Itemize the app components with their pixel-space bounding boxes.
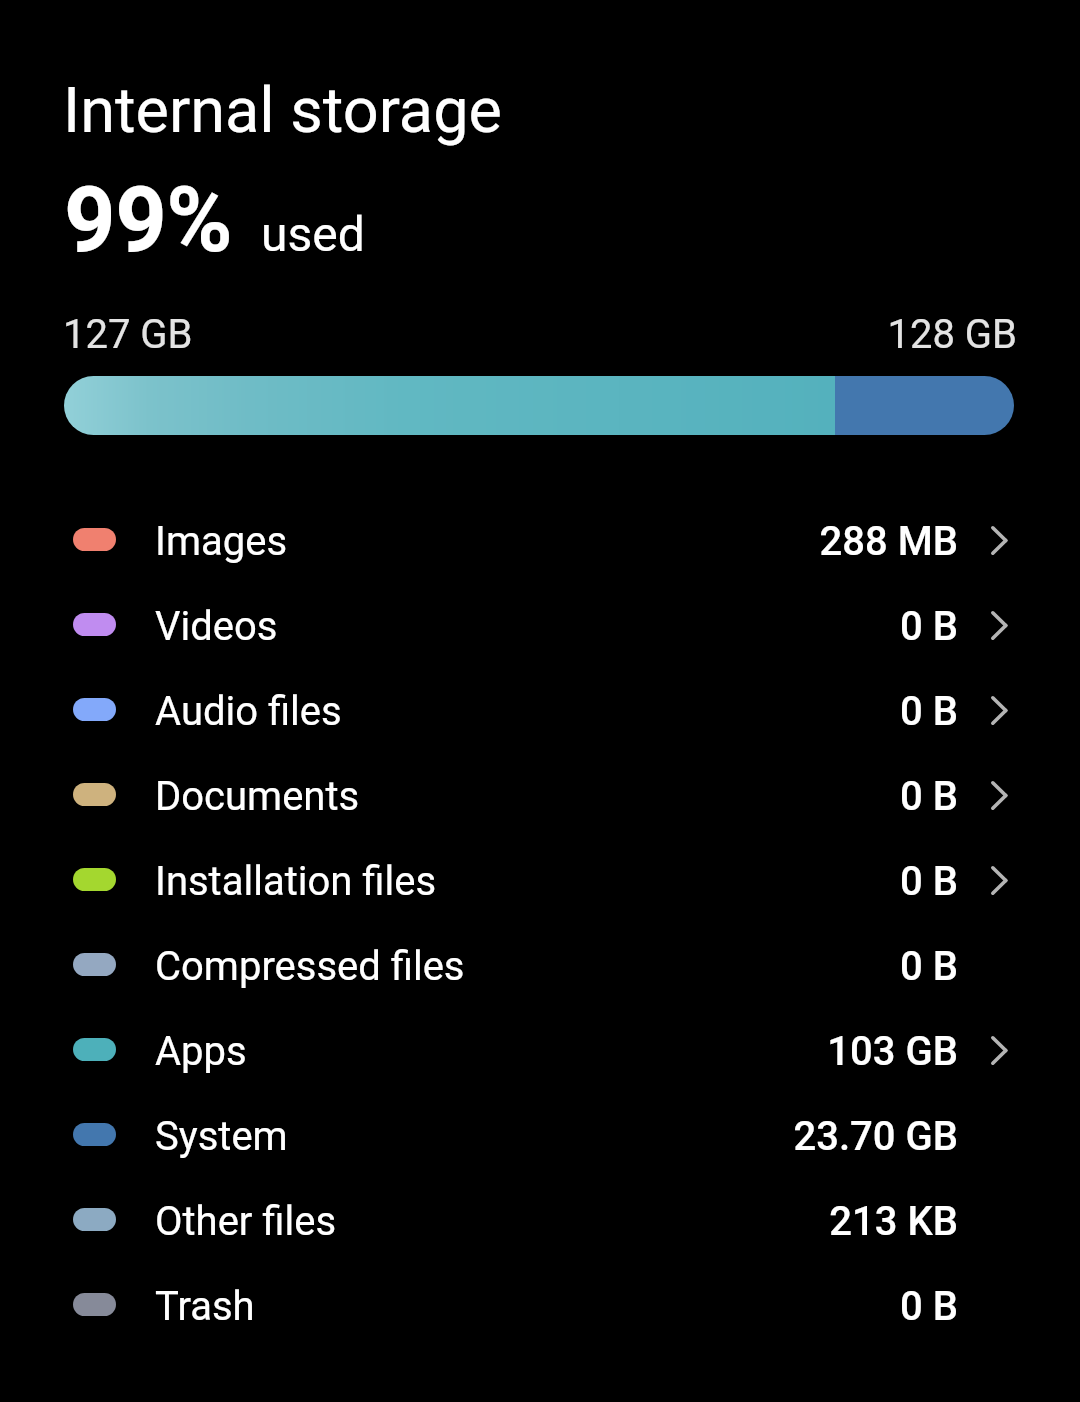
staticText: System xyxy=(155,1113,288,1160)
staticText: Audio files xyxy=(155,688,342,735)
button[interactable]: Installation files xyxy=(0,839,1080,924)
staticText: Other files xyxy=(155,1198,337,1245)
staticText: Images xyxy=(155,518,288,565)
button[interactable]: Open Audio files xyxy=(971,669,1027,754)
staticText: 23.70 GB xyxy=(793,1113,958,1160)
button[interactable]: Open Videos xyxy=(971,584,1027,669)
button[interactable]: Apps xyxy=(0,1009,1080,1094)
button[interactable]: Documents xyxy=(0,754,1080,839)
button[interactable]: Compressed files xyxy=(0,924,1080,1009)
staticText: 0 B xyxy=(900,1283,958,1330)
staticText: 288 MB xyxy=(819,518,958,565)
staticText: 0 B xyxy=(900,858,958,905)
staticText: Trash xyxy=(155,1283,255,1330)
button[interactable]: Videos xyxy=(0,584,1080,669)
button[interactable]: Open Installation files xyxy=(971,839,1027,924)
staticText: 103 GB xyxy=(827,1028,958,1075)
button[interactable]: Images xyxy=(0,499,1080,584)
button[interactable]: Other files xyxy=(0,1179,1080,1264)
staticText: 99% xyxy=(64,168,233,273)
staticText: Compressed files xyxy=(155,943,465,990)
staticText: used xyxy=(261,206,365,262)
button[interactable]: Open Apps xyxy=(971,1009,1027,1094)
staticText: 128 GB xyxy=(887,311,1017,358)
button[interactable]: Open Images xyxy=(971,499,1027,584)
staticText: Installation files xyxy=(155,858,437,905)
staticText: 0 B xyxy=(900,603,958,650)
staticText: 0 B xyxy=(900,773,958,820)
staticText: Internal storage xyxy=(63,74,502,148)
staticText: 127 GB xyxy=(63,311,193,358)
staticText: 213 KB xyxy=(829,1198,958,1245)
button[interactable]: Trash xyxy=(0,1264,1080,1349)
staticText: 0 B xyxy=(900,688,958,735)
button[interactable]: Audio files xyxy=(0,669,1080,754)
button[interactable]: System xyxy=(0,1094,1080,1179)
staticText: Videos xyxy=(155,603,278,650)
staticText: 0 B xyxy=(900,943,958,990)
button[interactable]: Open Documents xyxy=(971,754,1027,839)
staticText: Apps xyxy=(155,1028,247,1075)
staticText: Documents xyxy=(155,773,360,820)
